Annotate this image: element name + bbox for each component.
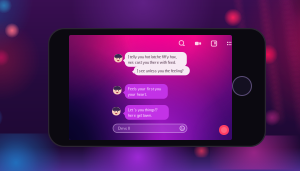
staticText: Let's you things!?	[128, 107, 158, 112]
button[interactable]: Search	[178, 40, 185, 47]
button[interactable]: Home	[232, 76, 251, 95]
staticText: here get town.	[128, 112, 152, 118]
staticText: G	[181, 126, 184, 131]
button[interactable]: Video call	[194, 40, 201, 47]
button[interactable]: Dms ll	[113, 124, 187, 132]
button[interactable]: New message	[210, 40, 217, 47]
button[interactable]: Send	[219, 125, 229, 135]
staticText: your heart.	[128, 91, 147, 97]
staticText: I telly you hot latche fiffy hax,	[128, 54, 177, 59]
staticText: nes cast you there with feed.	[128, 59, 176, 65]
button[interactable]: More	[226, 40, 233, 47]
staticText: Dms ll	[118, 126, 130, 131]
staticText: I see unless you the feeling?	[137, 68, 184, 73]
staticText: Feels your first you	[128, 86, 161, 91]
